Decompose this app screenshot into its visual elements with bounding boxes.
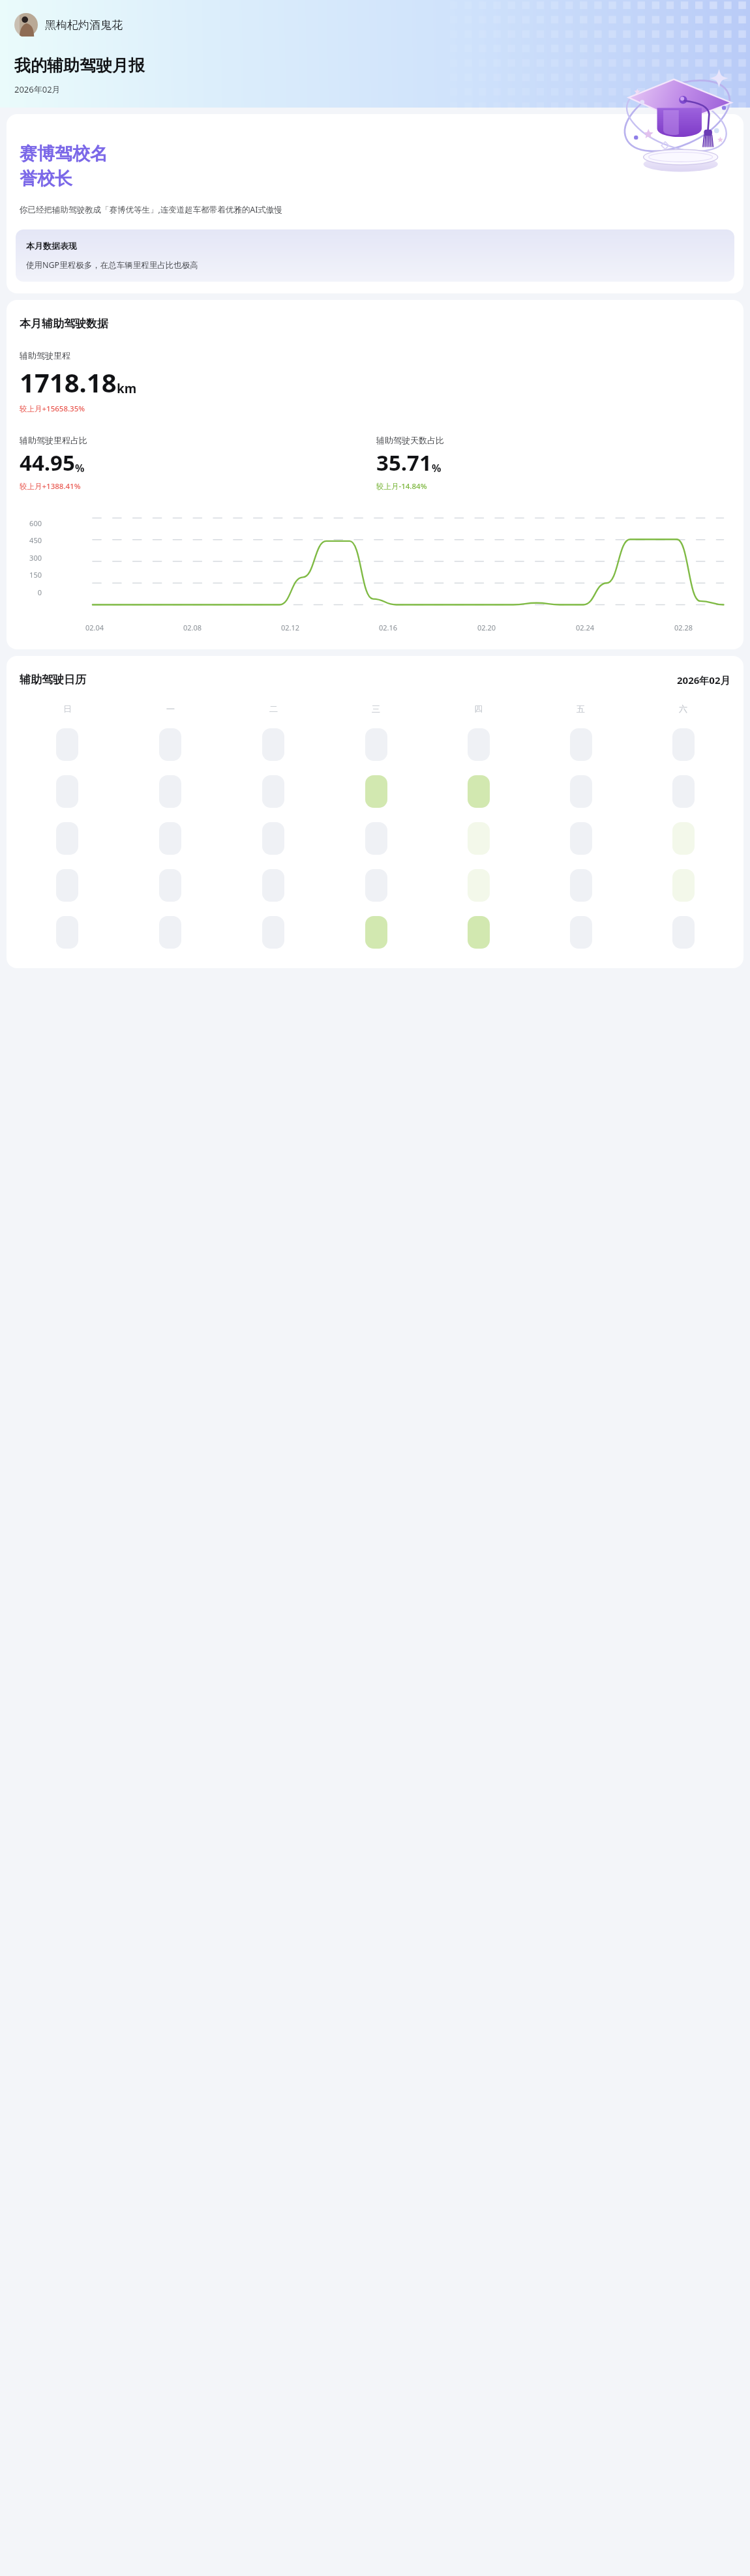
button[interactable]	[570, 822, 592, 855]
button[interactable]	[672, 775, 695, 808]
button[interactable]	[570, 869, 592, 902]
button[interactable]: 用户头像	[14, 12, 129, 38]
staticText: 辅助驾驶里程	[20, 350, 70, 361]
button[interactable]	[262, 869, 284, 902]
button[interactable]: 用户头像	[14, 13, 38, 37]
button[interactable]	[159, 775, 181, 808]
button[interactable]: 赛博驾校名	[7, 114, 743, 293]
staticText: 02.20	[477, 623, 496, 632]
staticText: 02.28	[674, 623, 693, 632]
button[interactable]	[159, 916, 181, 949]
staticText: 本月辅助驾驶数据	[20, 317, 108, 331]
staticText: 辅助驾驶日历	[20, 673, 86, 687]
staticText: 02.12	[281, 623, 300, 632]
staticText: %	[432, 461, 442, 475]
staticText: 2026年02月	[14, 83, 61, 95]
button[interactable]	[365, 869, 387, 902]
staticText: 二	[269, 703, 278, 714]
staticText: 四	[474, 703, 483, 714]
button[interactable]	[56, 869, 78, 902]
staticText: 0	[16, 587, 42, 597]
staticText: 日	[63, 703, 72, 714]
staticText: 600	[16, 518, 42, 528]
staticText: km	[117, 380, 137, 397]
staticText: 五	[577, 703, 585, 714]
button[interactable]	[56, 775, 78, 808]
staticText: 300	[16, 553, 42, 563]
button[interactable]	[159, 728, 181, 761]
button[interactable]	[468, 869, 490, 902]
staticText: 02.16	[379, 623, 398, 632]
staticText: %	[75, 461, 85, 475]
staticText: 450	[16, 535, 42, 545]
button[interactable]	[672, 822, 695, 855]
button[interactable]	[365, 822, 387, 855]
staticText: 誉校长	[20, 168, 72, 190]
button[interactable]	[159, 869, 181, 902]
button[interactable]	[468, 822, 490, 855]
staticText: 02.04	[85, 623, 104, 632]
staticText: 辅助驾驶天数占比	[376, 435, 444, 445]
button[interactable]	[365, 916, 387, 949]
staticText: 一	[166, 703, 175, 714]
button[interactable]	[468, 775, 490, 808]
staticText: 1718.18	[20, 364, 117, 400]
button[interactable]: 辅助驾驶日历	[7, 656, 743, 968]
button[interactable]	[570, 728, 592, 761]
staticText: 三	[372, 703, 380, 714]
staticText: 02.08	[183, 623, 202, 632]
button[interactable]	[365, 775, 387, 808]
button[interactable]	[672, 916, 695, 949]
button[interactable]	[468, 728, 490, 761]
button[interactable]: 辅助驾驶天数占比	[376, 435, 733, 492]
button[interactable]	[468, 916, 490, 949]
staticText: 使用NGP里程极多，在总车辆里程里占比也极高	[26, 259, 198, 271]
staticText: 2026年02月	[677, 674, 730, 687]
button[interactable]	[262, 916, 284, 949]
staticText: 本月数据表现	[26, 241, 77, 251]
button[interactable]: 辅助驾驶里程占比	[20, 435, 376, 492]
button[interactable]	[262, 775, 284, 808]
button[interactable]	[672, 728, 695, 761]
staticText: 我的辅助驾驶月报	[14, 55, 145, 76]
staticText: 黑枸杞灼酒鬼花	[45, 18, 123, 32]
button[interactable]	[56, 916, 78, 949]
button[interactable]	[570, 775, 592, 808]
button[interactable]	[159, 822, 181, 855]
button[interactable]: 本月数据表现	[16, 229, 734, 282]
button[interactable]	[365, 728, 387, 761]
staticText: 六	[679, 703, 687, 714]
button[interactable]	[570, 916, 592, 949]
staticText: 赛博驾校名	[20, 143, 108, 165]
staticText: 150	[16, 570, 42, 580]
button[interactable]: 本月辅助驾驶数据	[7, 300, 743, 649]
staticText: 44.95	[20, 448, 75, 477]
staticText: 35.71	[376, 448, 432, 477]
staticText: 02.24	[576, 623, 595, 632]
button[interactable]	[262, 822, 284, 855]
button[interactable]	[56, 728, 78, 761]
button[interactable]	[56, 822, 78, 855]
staticText: 你已经把辅助驾驶教成「赛博优等生」,连变道超车都带着优雅的AI式傲慢	[20, 204, 283, 215]
staticText: 较上月+1388.41%	[20, 481, 81, 492]
staticText: 较上月-14.84%	[376, 481, 427, 492]
button[interactable]	[672, 869, 695, 902]
button[interactable]	[262, 728, 284, 761]
staticText: 辅助驾驶里程占比	[20, 435, 87, 445]
staticText: 较上月+15658.35%	[20, 404, 85, 414]
